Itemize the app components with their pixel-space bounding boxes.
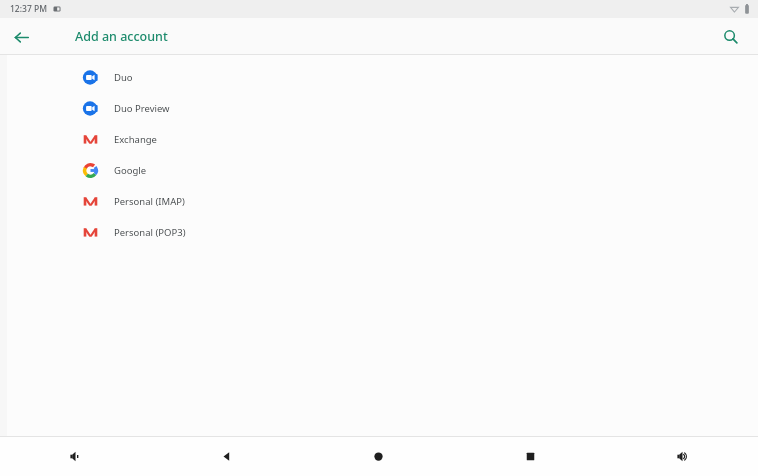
- button[interactable]: Personal (IMAP): [0, 186, 758, 217]
- staticText: Duo: [114, 71, 133, 84]
- staticText: 12:37 PM: [10, 3, 47, 15]
- staticText: Add an account: [75, 28, 168, 45]
- staticText: Duo Preview: [114, 102, 170, 115]
- button[interactable]: Personal (POP3): [0, 217, 758, 248]
- button[interactable]: Back: [6, 22, 36, 52]
- button[interactable]: Volume up: [606, 437, 758, 476]
- button[interactable]: Recent apps: [454, 437, 606, 476]
- staticText: Personal (IMAP): [114, 195, 185, 208]
- staticText: Google: [114, 164, 147, 177]
- button[interactable]: Back: [151, 437, 302, 476]
- button[interactable]: Volume down: [0, 437, 151, 476]
- staticText: Exchange: [114, 133, 157, 146]
- button[interactable]: Duo Preview: [0, 93, 758, 124]
- button[interactable]: Exchange: [0, 124, 758, 155]
- button[interactable]: Google: [0, 155, 758, 186]
- button[interactable]: Duo: [0, 62, 758, 93]
- button[interactable]: Home: [302, 437, 454, 476]
- button[interactable]: Search: [716, 22, 746, 52]
- staticText: Personal (POP3): [114, 226, 186, 239]
